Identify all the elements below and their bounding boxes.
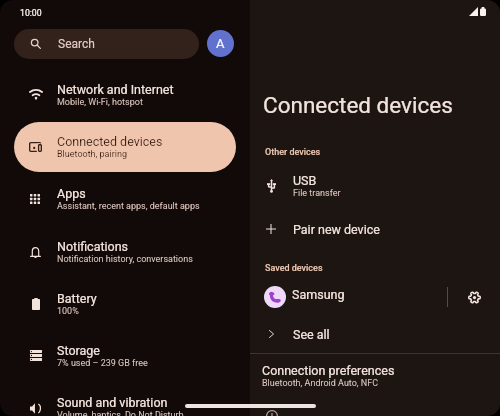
staticText: Mobile, Wi-Fi, hotspot: [57, 97, 143, 108]
button[interactable]: Storage: [14, 331, 236, 381]
button[interactable]: Samsung device settings: [448, 283, 500, 311]
staticText: 7% used – 239 GB free: [57, 358, 148, 369]
staticText: Network and Internet: [57, 82, 174, 97]
staticText: Sound and vibration: [57, 395, 168, 410]
button[interactable]: Pair new device: [250, 214, 500, 244]
staticText: Connected devices: [263, 92, 453, 118]
button[interactable]: Apps: [14, 174, 236, 224]
staticText: Storage: [57, 343, 100, 358]
staticText: Notifications: [57, 239, 129, 254]
staticText: 100%: [57, 306, 79, 317]
button[interactable]: Samsung: [250, 283, 447, 311]
button[interactable]: Sound and vibration: [14, 383, 236, 416]
staticText: Connection preferences: [262, 363, 395, 378]
staticText: Other devices: [265, 147, 321, 158]
staticText: Bluetooth, pairing: [57, 149, 127, 160]
staticText: Saved devices: [265, 263, 323, 274]
staticText: Bluetooth, Android Auto, NFC: [262, 378, 379, 389]
button[interactable]: Search: [14, 29, 199, 59]
button[interactable]: USB: [250, 168, 500, 203]
button[interactable]: Connection preferences: [250, 360, 500, 395]
staticText: Battery: [57, 291, 97, 306]
button[interactable]: Account: [207, 30, 234, 57]
staticText: Samsung: [292, 287, 345, 302]
staticText: Pair new device: [293, 222, 380, 237]
button[interactable]: See all: [250, 319, 500, 349]
button[interactable]: Battery: [14, 279, 236, 329]
button[interactable]: Notifications: [14, 227, 236, 277]
staticText: A: [216, 36, 225, 51]
staticText: Volume, haptics, Do Not Disturb: [57, 410, 184, 416]
staticText: File transfer: [293, 188, 341, 199]
button[interactable]: Connected devices: [14, 122, 236, 172]
button[interactable]: Network and Internet: [14, 70, 236, 120]
staticText: Notification history, conversations: [57, 254, 193, 265]
staticText: USB: [293, 173, 317, 188]
staticText: Assistant, recent apps, default apps: [57, 201, 200, 212]
staticText: Search: [58, 37, 95, 51]
staticText: 10:00: [20, 8, 42, 18]
staticText: Apps: [57, 186, 86, 201]
staticText: See all: [293, 327, 330, 342]
staticText: Connected devices: [57, 134, 163, 149]
